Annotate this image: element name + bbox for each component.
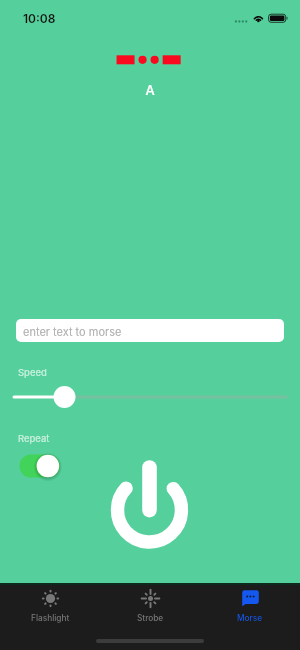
button[interactable]: Morse: [200, 583, 300, 623]
staticText: Repeat: [18, 433, 50, 444]
button[interactable]: Strobe: [100, 583, 200, 623]
button[interactable]: [0, 385, 300, 409]
staticText: A: [0, 82, 300, 98]
staticText: enter text to morse: [23, 325, 122, 338]
button[interactable]: Power: [104, 455, 195, 555]
button[interactable]: Repeat: [17, 452, 62, 480]
staticText: 10:08: [23, 11, 56, 26]
staticText: Strobe: [137, 613, 164, 623]
staticText: Speed: [18, 367, 47, 378]
button[interactable]: Flashlight: [0, 583, 100, 623]
button[interactable]: enter text to morse: [16, 319, 284, 342]
staticText: Flashlight: [31, 613, 70, 623]
staticText: Morse: [237, 613, 263, 623]
